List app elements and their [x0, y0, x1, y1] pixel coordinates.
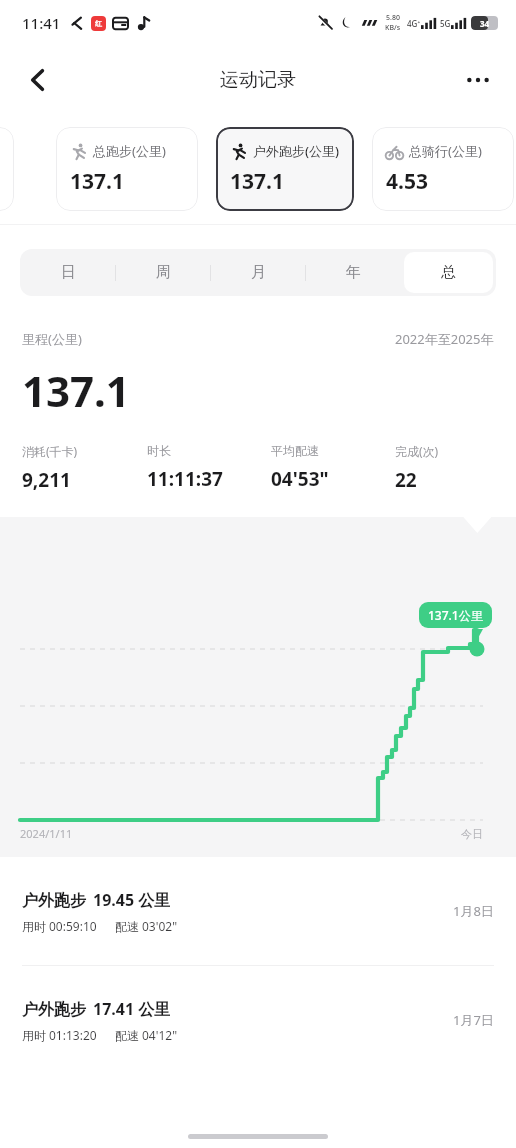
staticText: 日: [61, 263, 76, 282]
button[interactable]: 总跑步(公里): [56, 127, 198, 211]
staticText: 配速: [115, 1028, 139, 1043]
staticText: 17.41 公里: [93, 998, 171, 1020]
staticText: 5G: [440, 18, 451, 29]
staticText: KB/s: [385, 23, 401, 33]
staticText: 11:11:37: [147, 466, 223, 492]
staticText: 用时: [22, 919, 46, 934]
staticText: 137.1: [230, 167, 284, 196]
button[interactable]: 总骑行(公里): [372, 127, 514, 211]
staticText: 9,211: [22, 467, 71, 493]
staticText: 4G⁺: [407, 18, 421, 29]
staticText: 137.1: [70, 167, 124, 196]
button[interactable]: 户外跑步(公里): [216, 127, 354, 211]
staticText: 137.1公里: [428, 607, 483, 623]
staticText: 平均配速: [271, 443, 319, 458]
staticText: 34: [480, 18, 490, 29]
staticText: 总骑行(公里): [409, 142, 482, 160]
button[interactable]: More options: [454, 56, 502, 104]
button[interactable]: 户外跑步: [0, 857, 516, 965]
staticText: 1月7日: [453, 1011, 494, 1029]
staticText: 户外跑步: [22, 891, 86, 911]
staticText: 运动记录: [220, 68, 296, 92]
staticText: 周: [156, 263, 171, 282]
button[interactable]: 月: [214, 252, 303, 293]
staticText: 今日: [461, 827, 483, 841]
staticText: 2024/1/11: [20, 826, 73, 841]
button[interactable]: 周: [119, 252, 208, 293]
staticText: 户外跑步(公里): [253, 142, 340, 160]
staticText: 时长: [147, 443, 171, 458]
staticText: 04'53": [271, 466, 329, 492]
staticText: 03'02": [142, 918, 178, 934]
staticText: 里程(公里): [22, 330, 82, 348]
button[interactable]: Back: [14, 56, 62, 104]
staticText: 年: [346, 263, 361, 282]
staticText: 月: [251, 263, 266, 282]
button[interactable]: 总: [404, 252, 493, 293]
staticText: 137.1: [22, 362, 130, 419]
staticText: 总跑步(公里): [93, 142, 166, 160]
staticText: 红: [95, 19, 102, 28]
staticText: 用时: [22, 1028, 46, 1043]
button[interactable]: 户外跑步: [0, 966, 516, 1074]
staticText: 04'12": [142, 1027, 178, 1043]
staticText: 11:41: [22, 13, 61, 33]
staticText: 01:13:20: [49, 1027, 97, 1043]
staticText: 4.53: [386, 167, 428, 196]
staticText: 22: [395, 467, 417, 493]
staticText: 5.80: [386, 13, 400, 23]
button[interactable]: 日: [23, 252, 113, 293]
staticText: 00:59:10: [49, 918, 97, 934]
button[interactable]: 年: [309, 252, 398, 293]
staticText: 户外跑步: [22, 1000, 86, 1020]
staticText: 消耗(千卡): [22, 443, 78, 459]
staticText: 配速: [115, 919, 139, 934]
staticText: 1月8日: [453, 902, 494, 920]
staticText: 总: [441, 263, 456, 282]
staticText: 2022年至2025年: [395, 330, 494, 348]
staticText: 完成(次): [395, 443, 439, 459]
staticText: 19.45 公里: [93, 889, 171, 911]
